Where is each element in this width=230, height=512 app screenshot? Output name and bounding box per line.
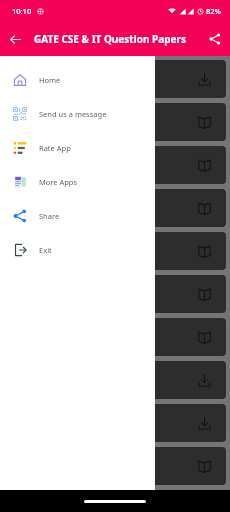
button[interactable]: Open item	[4, 361, 226, 399]
button[interactable]: Home	[0, 66, 155, 94]
staticText: Rate App	[39, 143, 71, 153]
other: Open item	[197, 287, 212, 302]
button[interactable]: Open item	[4, 146, 226, 184]
other: Open item	[197, 158, 212, 173]
other: Open item	[197, 330, 212, 345]
button[interactable]: Open item	[4, 232, 226, 270]
button[interactable]: Share	[200, 24, 230, 54]
staticText: GATE CSE & IT Question Papers	[34, 32, 200, 46]
other: Open item	[197, 416, 212, 431]
button[interactable]: Send us a message	[0, 100, 155, 128]
staticText: Send us a message	[39, 109, 107, 119]
staticText: More Apps	[39, 177, 78, 187]
button[interactable]: Open item	[4, 60, 226, 98]
button[interactable]: Back	[0, 24, 30, 54]
button[interactable]: Open item	[4, 189, 226, 227]
button[interactable]: Exit	[0, 236, 155, 264]
button[interactable]: Open item	[4, 103, 226, 141]
button[interactable]: Open item	[4, 318, 226, 356]
button[interactable]: Share	[0, 202, 155, 230]
other: Open item	[197, 459, 212, 474]
staticText: 10:10	[12, 6, 32, 16]
button[interactable]: Open item	[4, 275, 226, 313]
staticText: 82%	[206, 6, 221, 16]
button[interactable]: More Apps	[0, 168, 155, 196]
other: Open item	[197, 115, 212, 130]
button[interactable]: Open item	[4, 447, 226, 485]
button[interactable]: Rate App	[0, 134, 155, 162]
staticText: Share	[39, 211, 60, 221]
staticText: Exit	[39, 245, 52, 255]
button[interactable]: Open item	[4, 404, 226, 442]
other: Open item	[197, 201, 212, 216]
other: Open item	[197, 373, 212, 388]
other: Open item	[197, 244, 212, 259]
other: Open item	[197, 72, 212, 87]
staticText: Home	[39, 75, 61, 85]
